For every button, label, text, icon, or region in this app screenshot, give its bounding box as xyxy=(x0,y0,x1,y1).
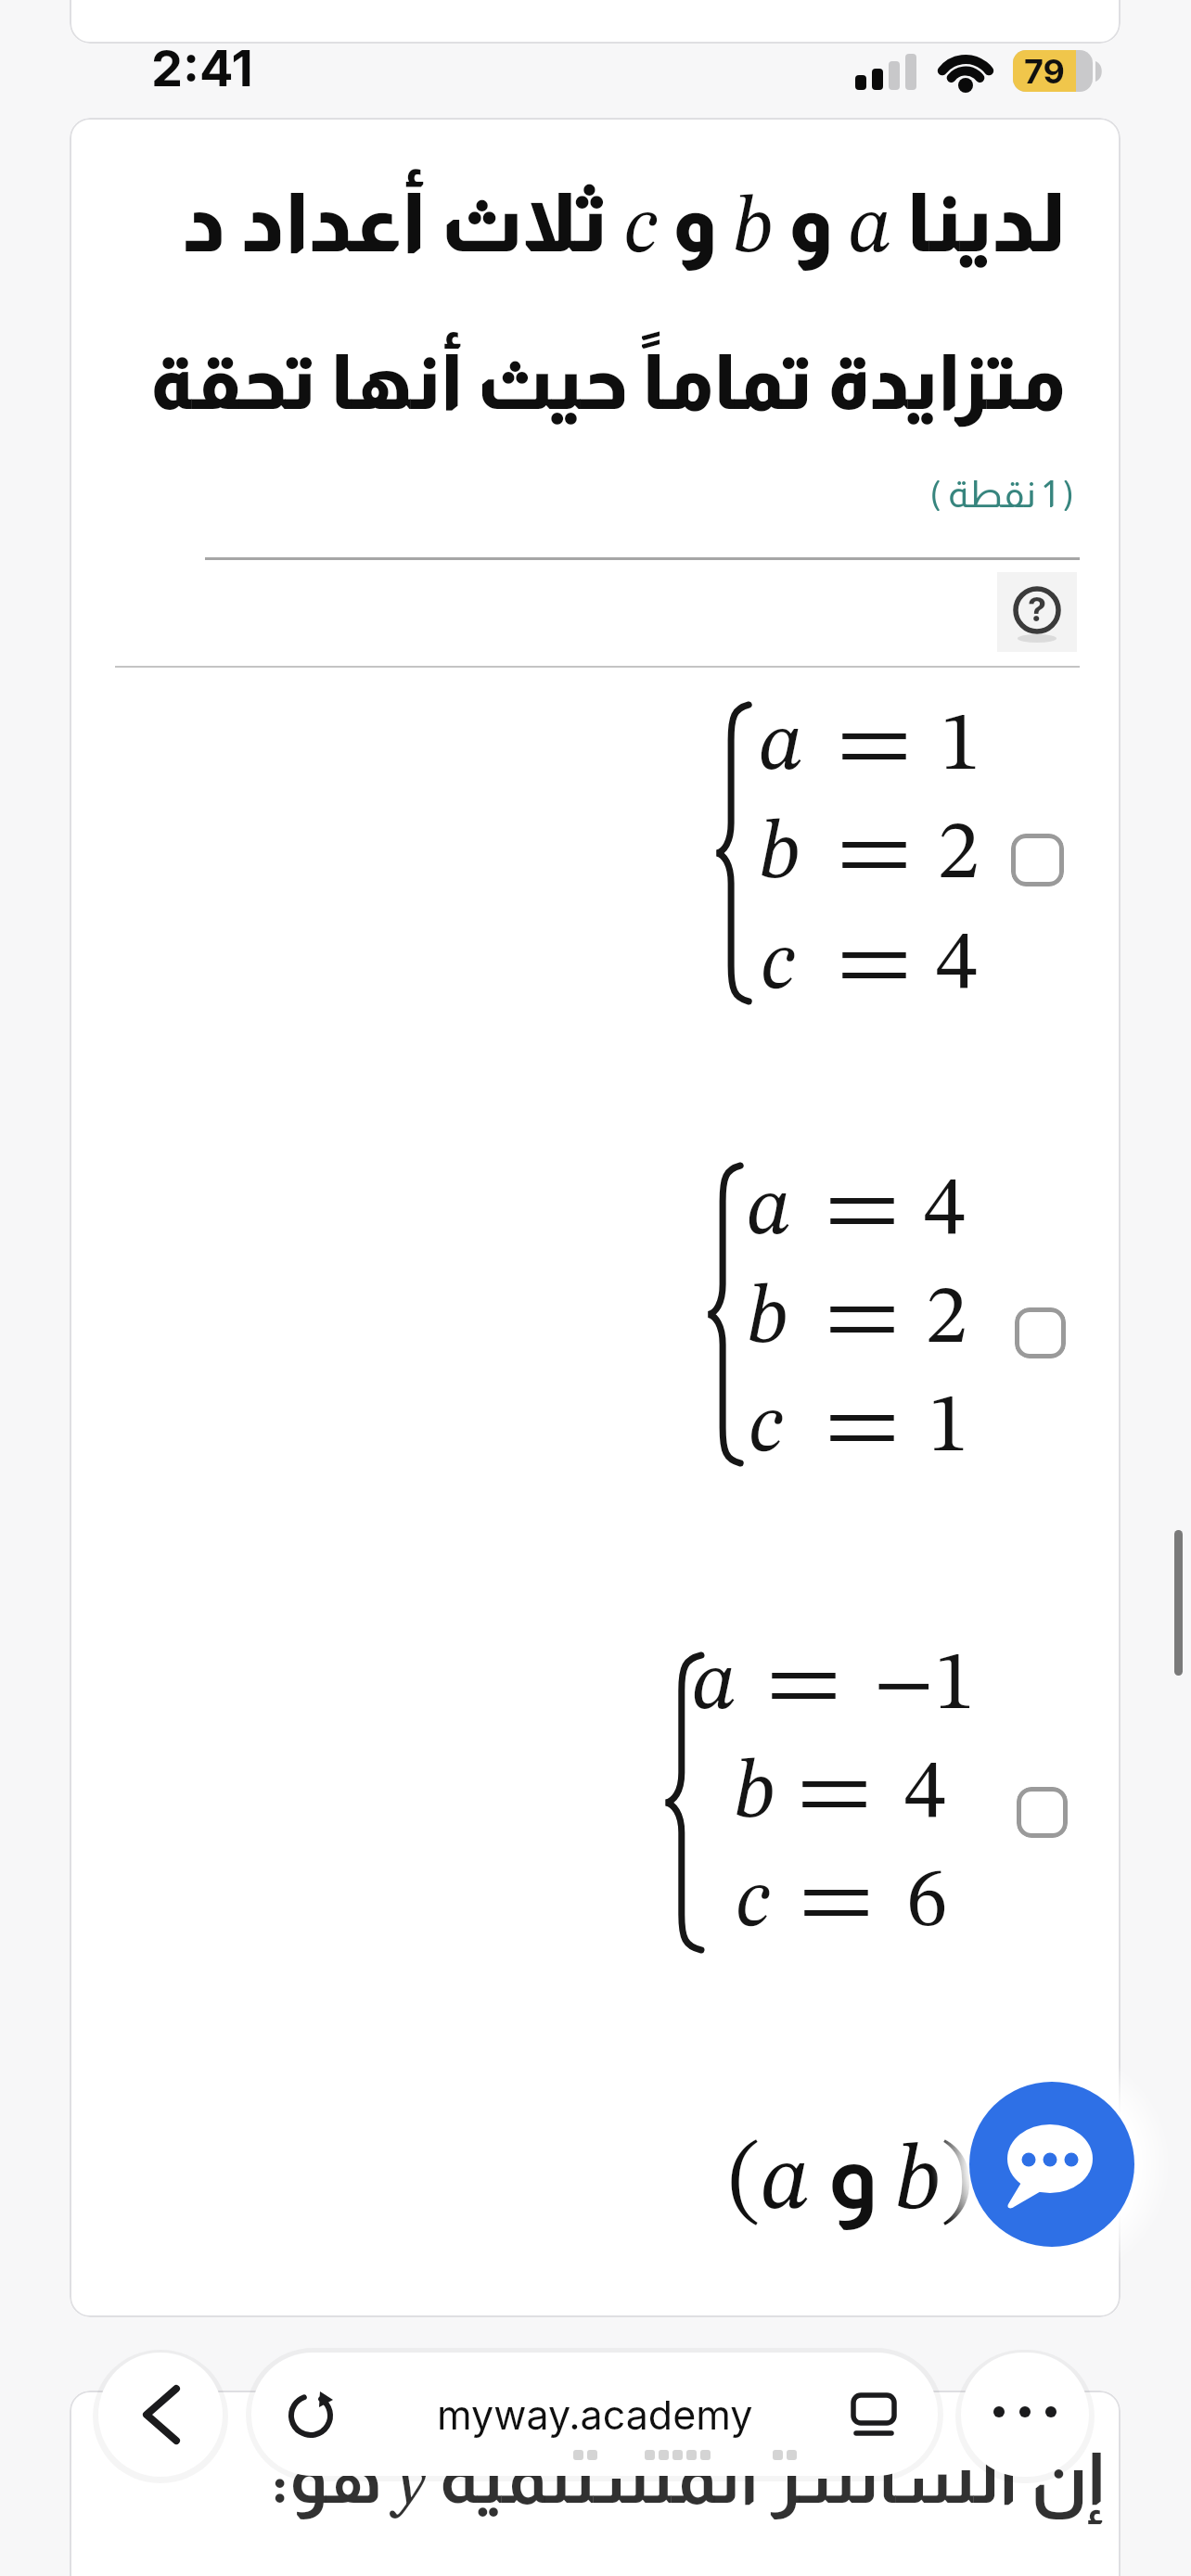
staticText: a xyxy=(759,705,804,788)
staticText: (a و b) xyxy=(637,2123,1064,2229)
button[interactable] xyxy=(961,2353,1089,2477)
button[interactable]: myway.academy xyxy=(251,2353,938,2476)
staticText: c xyxy=(749,1386,783,1470)
staticText: 4 xyxy=(936,924,978,1007)
staticText: b xyxy=(747,1278,788,1361)
staticText: c xyxy=(761,924,795,1007)
staticText: 2 xyxy=(938,813,980,897)
staticText: a xyxy=(692,1644,737,1728)
button[interactable] xyxy=(98,2353,223,2477)
staticText: 6 xyxy=(906,1861,948,1945)
staticText: لدينا a و b و c ثلاث أعداد د xyxy=(116,177,1066,271)
staticText: b xyxy=(734,1753,775,1836)
staticText: c xyxy=(736,1861,770,1945)
staticText: إن الساسر المستنمية y هو: xyxy=(186,2439,1104,2519)
staticText: 79 xyxy=(1024,51,1065,92)
staticText: = xyxy=(824,1386,901,1470)
staticText: ( 1 نقطة ) xyxy=(610,474,1074,516)
staticText: 2 xyxy=(926,1278,967,1361)
staticText: = xyxy=(836,705,913,788)
staticText: متزايدة تماماً حيث أنها تحقة xyxy=(116,340,1066,426)
button[interactable] xyxy=(1017,1787,1068,1838)
staticText: −1 xyxy=(874,1644,976,1728)
staticText: = xyxy=(765,1644,842,1728)
button[interactable] xyxy=(1015,1307,1066,1358)
staticText: = xyxy=(836,813,913,897)
staticText: = xyxy=(824,1169,901,1253)
staticText: 1 xyxy=(940,705,981,788)
staticText: b xyxy=(759,813,800,897)
button[interactable] xyxy=(1011,834,1064,886)
staticText: 1 xyxy=(928,1386,969,1470)
staticText: 4 xyxy=(924,1169,966,1253)
staticText: a xyxy=(747,1169,792,1253)
staticText: = xyxy=(796,1753,873,1836)
staticText: = xyxy=(824,1278,901,1361)
staticText: = xyxy=(836,924,913,1007)
staticText: 2:41 xyxy=(151,38,253,98)
staticText: ? xyxy=(1028,589,1047,630)
button[interactable] xyxy=(969,2082,1134,2247)
staticText: = xyxy=(798,1861,875,1945)
staticText: myway.academy xyxy=(437,2391,753,2439)
staticText: 4 xyxy=(904,1753,946,1836)
button[interactable] xyxy=(997,572,1077,652)
